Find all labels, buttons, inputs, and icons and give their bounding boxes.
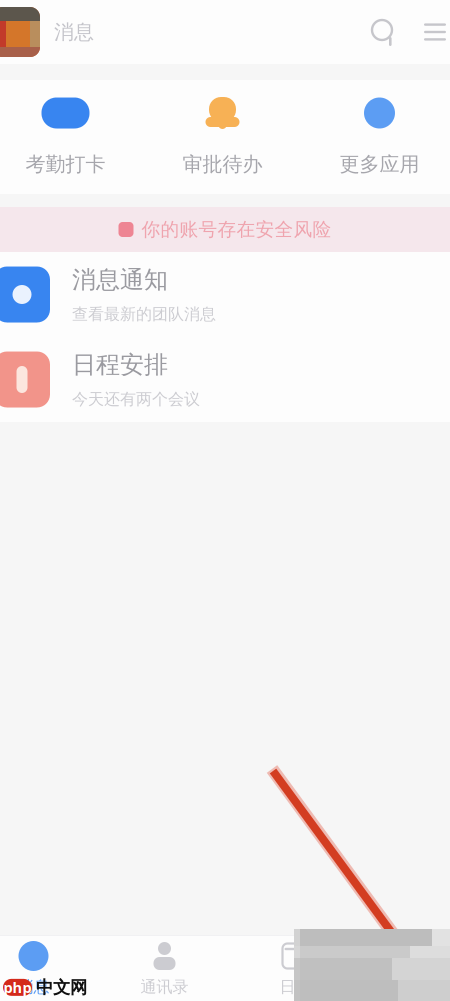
staticText: 今天还有两个会议 <box>72 389 200 409</box>
staticText: 消息 <box>54 20 94 44</box>
button[interactable]: 考勤打卡 <box>0 80 144 194</box>
staticText: 查看最新的团队消息 <box>72 304 216 324</box>
staticText: 更多应用 <box>339 152 419 177</box>
staticText: 中文网 <box>36 977 87 998</box>
button[interactable]: 审批待办 <box>144 80 301 194</box>
button[interactable]: Search <box>367 15 401 49</box>
staticText: 审批待办 <box>182 152 262 177</box>
button[interactable]: 通讯录 <box>99 935 230 1001</box>
staticText: php <box>3 978 31 997</box>
staticText: 考勤打卡 <box>25 152 105 177</box>
staticText: 你的账号存在安全风险 <box>141 218 331 241</box>
staticText: 日程安排 <box>72 350 168 379</box>
button[interactable]: 日程安排 <box>0 337 450 422</box>
staticText: 消息通知 <box>72 265 168 294</box>
button[interactable]: 更多应用 <box>301 80 450 194</box>
button[interactable]: 消息通知 <box>0 252 450 337</box>
button[interactable]: 你的账号存在安全风险 <box>0 207 450 252</box>
button[interactable]: More <box>418 15 450 49</box>
button[interactable]: 消息 <box>0 935 99 1001</box>
button[interactable]: Profile <box>0 7 40 57</box>
button[interactable]: 我的 <box>361 935 450 1001</box>
staticText: 通讯录 <box>140 977 188 997</box>
staticText: 日程 <box>279 977 311 997</box>
staticText: 消息 <box>17 977 49 997</box>
button[interactable]: 日程 <box>230 935 361 1001</box>
